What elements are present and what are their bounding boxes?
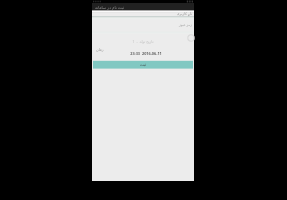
staticText: 23:33 2016-06-11: [95, 51, 197, 56]
staticText: ثبت نام در سامانه: [95, 5, 125, 10]
staticText: رمز عبور: [92, 22, 192, 27]
staticText: زمان: [96, 48, 104, 52]
button[interactable]: [92, 22, 194, 31]
staticText: تاریخ تولد - 1: [92, 39, 194, 44]
button[interactable]: ثبت: [93, 61, 193, 69]
staticText: ثبت: [93, 62, 193, 67]
button[interactable]: Avatar: [186, 34, 194, 42]
staticText: نام کاربری: [92, 11, 192, 16]
button[interactable]: [92, 10, 194, 17]
